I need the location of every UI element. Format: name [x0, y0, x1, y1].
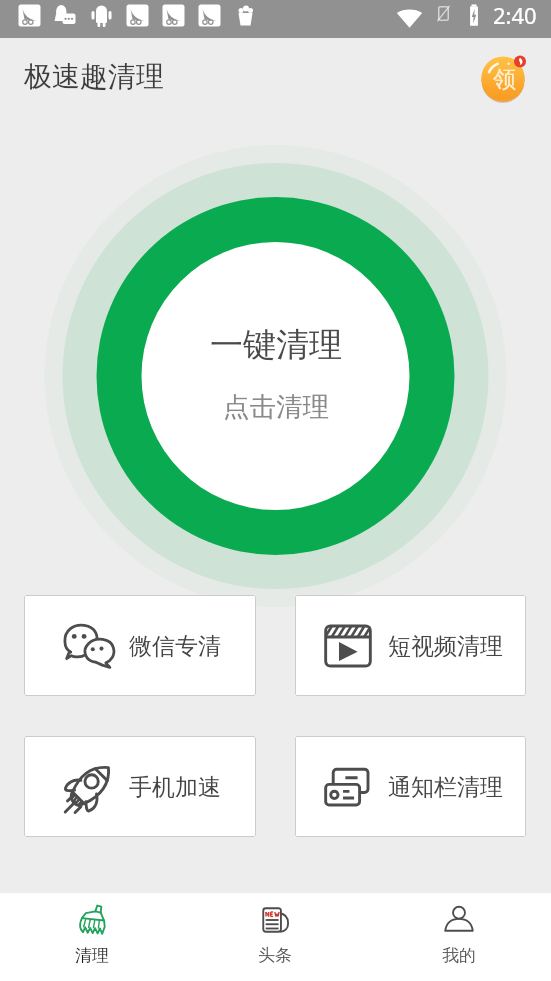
- staticText: 极速趣清理: [24, 59, 164, 94]
- staticText: 清理: [75, 945, 109, 966]
- button[interactable]: 头条: [183, 893, 367, 981]
- staticText: 我的: [442, 945, 476, 966]
- staticText: 点击清理: [223, 390, 329, 423]
- staticText: 微信专清: [129, 632, 221, 661]
- button[interactable]: 领取奖励: [479, 54, 527, 102]
- staticText: 一键清理: [210, 324, 342, 366]
- staticText: 短视频清理: [388, 632, 503, 661]
- button[interactable]: 我的: [367, 893, 551, 981]
- staticText: 领: [493, 65, 516, 94]
- button[interactable]: 短视频清理: [295, 595, 526, 696]
- staticText: 通知栏清理: [388, 773, 503, 802]
- staticText: 头条: [258, 945, 292, 966]
- staticText: 2:40: [493, 0, 537, 30]
- staticText: 手机加速: [129, 773, 221, 802]
- button[interactable]: 清理: [0, 893, 183, 981]
- button[interactable]: 微信专清: [24, 595, 256, 696]
- button[interactable]: 通知栏清理: [295, 736, 526, 837]
- button[interactable]: 手机加速: [24, 736, 256, 837]
- button[interactable]: 一键清理: [142, 242, 410, 510]
